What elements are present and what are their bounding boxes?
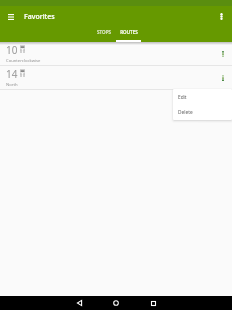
staticText: STOPS <box>97 29 111 35</box>
button[interactable]: 10 <box>0 42 232 65</box>
staticText: Edit <box>178 94 187 101</box>
button[interactable]: Back <box>72 296 86 310</box>
button[interactable]: Home <box>109 296 123 310</box>
staticText: North <box>6 82 18 88</box>
button[interactable]: ROUTES <box>116 27 141 42</box>
button[interactable]: 14 <box>0 66 232 89</box>
button[interactable]: Open navigation drawer <box>0 6 21 27</box>
staticText: 10 <box>6 43 18 57</box>
button[interactable]: STOPS <box>91 27 116 42</box>
staticText: 14 <box>6 67 18 81</box>
button[interactable]: More options <box>211 6 232 27</box>
button[interactable]: Edit <box>173 89 232 104</box>
button[interactable]: Delete <box>173 104 232 119</box>
staticText: ROUTES <box>120 29 138 35</box>
staticText: Favorites <box>24 12 55 22</box>
button[interactable]: Row options <box>214 69 232 87</box>
button[interactable]: Recents <box>146 296 160 310</box>
staticText: Counterclockwise <box>6 58 41 64</box>
button[interactable]: Row options <box>214 45 232 63</box>
staticText: Delete <box>178 109 193 116</box>
